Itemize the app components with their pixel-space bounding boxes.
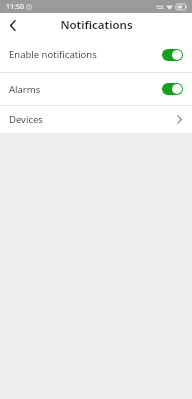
- button[interactable]: Alarms: [0, 73, 192, 105]
- staticText: 11:50: [6, 2, 24, 12]
- staticText: Enable notifications: [9, 48, 162, 61]
- staticText: Alarms: [9, 83, 162, 96]
- button[interactable]: Devices: [0, 106, 192, 133]
- staticText: Devices: [9, 113, 177, 126]
- button[interactable]: Enable notifications: [0, 37, 192, 72]
- staticText: Notifications: [60, 17, 133, 33]
- button[interactable]: Back: [0, 13, 26, 37]
